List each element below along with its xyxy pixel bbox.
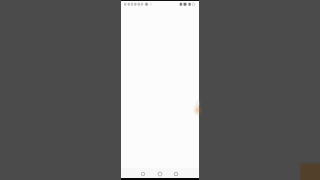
- button[interactable]: Back: [136, 168, 150, 178]
- button[interactable]: Recents: [169, 168, 183, 178]
- button[interactable]: Home: [153, 168, 167, 178]
